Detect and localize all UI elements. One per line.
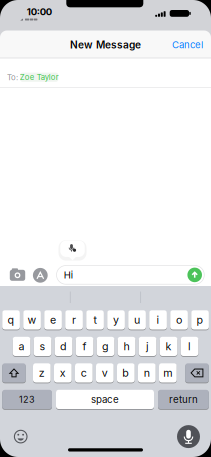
staticText: space (91, 393, 119, 405)
button[interactable]: Emoji (14, 430, 28, 444)
staticText: e (50, 313, 56, 326)
button[interactable]: a (13, 336, 30, 357)
staticText: w (27, 313, 36, 326)
staticText: m (163, 366, 172, 379)
button[interactable]: w (23, 310, 41, 330)
staticText: v (102, 366, 108, 379)
staticText: k (165, 340, 171, 353)
button[interactable]: c (75, 363, 93, 383)
button[interactable]: Apps (33, 268, 48, 283)
staticText: r (72, 313, 76, 326)
button[interactable]: b (117, 363, 135, 383)
button[interactable]: Delete (185, 363, 209, 383)
button[interactable]: r (65, 310, 83, 330)
button[interactable]: Shift (2, 363, 26, 383)
staticText: l (188, 340, 191, 353)
staticText: t (93, 313, 96, 326)
button[interactable]: m (159, 363, 177, 383)
staticText: To: (7, 73, 18, 82)
staticText: f (82, 340, 86, 353)
button[interactable]: l (181, 336, 198, 357)
staticText: Zoe Taylor (20, 72, 59, 82)
button[interactable]: Message (56, 265, 205, 285)
button[interactable]: y (107, 310, 125, 330)
button[interactable]: j (139, 336, 156, 357)
staticText: return (169, 393, 198, 405)
staticText: 10:00 (27, 6, 52, 18)
button[interactable]: t (86, 310, 104, 330)
staticText: i (156, 313, 159, 326)
button[interactable]: return (158, 389, 209, 410)
staticText: s (40, 340, 46, 353)
staticText: z (39, 366, 45, 379)
button[interactable]: k (160, 336, 177, 357)
staticText: b (122, 366, 129, 379)
staticText: 123 (19, 394, 35, 405)
staticText: h (123, 340, 129, 353)
staticText: p (196, 313, 203, 326)
button[interactable]: q (2, 310, 20, 330)
staticText: u (134, 313, 140, 326)
staticText: Cancel (172, 39, 203, 51)
button[interactable]: space (56, 389, 154, 410)
staticText: New Message (70, 39, 141, 51)
staticText: g (102, 340, 109, 353)
button[interactable]: Dictation (177, 425, 200, 448)
button[interactable]: Cancel (172, 39, 203, 51)
staticText: x (60, 366, 66, 379)
button[interactable]: i (149, 310, 167, 330)
staticText: j (146, 340, 149, 353)
button[interactable]: v (96, 363, 114, 383)
staticText: c (81, 366, 87, 379)
button[interactable]: n (138, 363, 156, 383)
button[interactable]: e (44, 310, 62, 330)
button[interactable]: g (97, 336, 114, 357)
button[interactable]: Send (187, 267, 202, 282)
button[interactable]: Zoe Taylor (20, 72, 59, 82)
button[interactable]: z (33, 363, 51, 383)
button[interactable]: p (191, 310, 209, 330)
button[interactable]: Camera (9, 268, 25, 283)
button[interactable]: h (118, 336, 135, 357)
staticText: a (18, 340, 24, 353)
button[interactable]: u (128, 310, 146, 330)
button[interactable]: d (55, 336, 72, 357)
staticText: o (176, 313, 182, 326)
staticText: y (113, 313, 119, 326)
staticText: d (60, 340, 67, 353)
button[interactable]: o (170, 310, 188, 330)
staticText: Hi (64, 269, 73, 281)
button[interactable]: f (76, 336, 93, 357)
staticText: n (144, 366, 150, 379)
button[interactable]: 123 (2, 389, 52, 410)
staticText: q (8, 313, 15, 326)
button[interactable]: s (34, 336, 51, 357)
button[interactable]: x (54, 363, 72, 383)
